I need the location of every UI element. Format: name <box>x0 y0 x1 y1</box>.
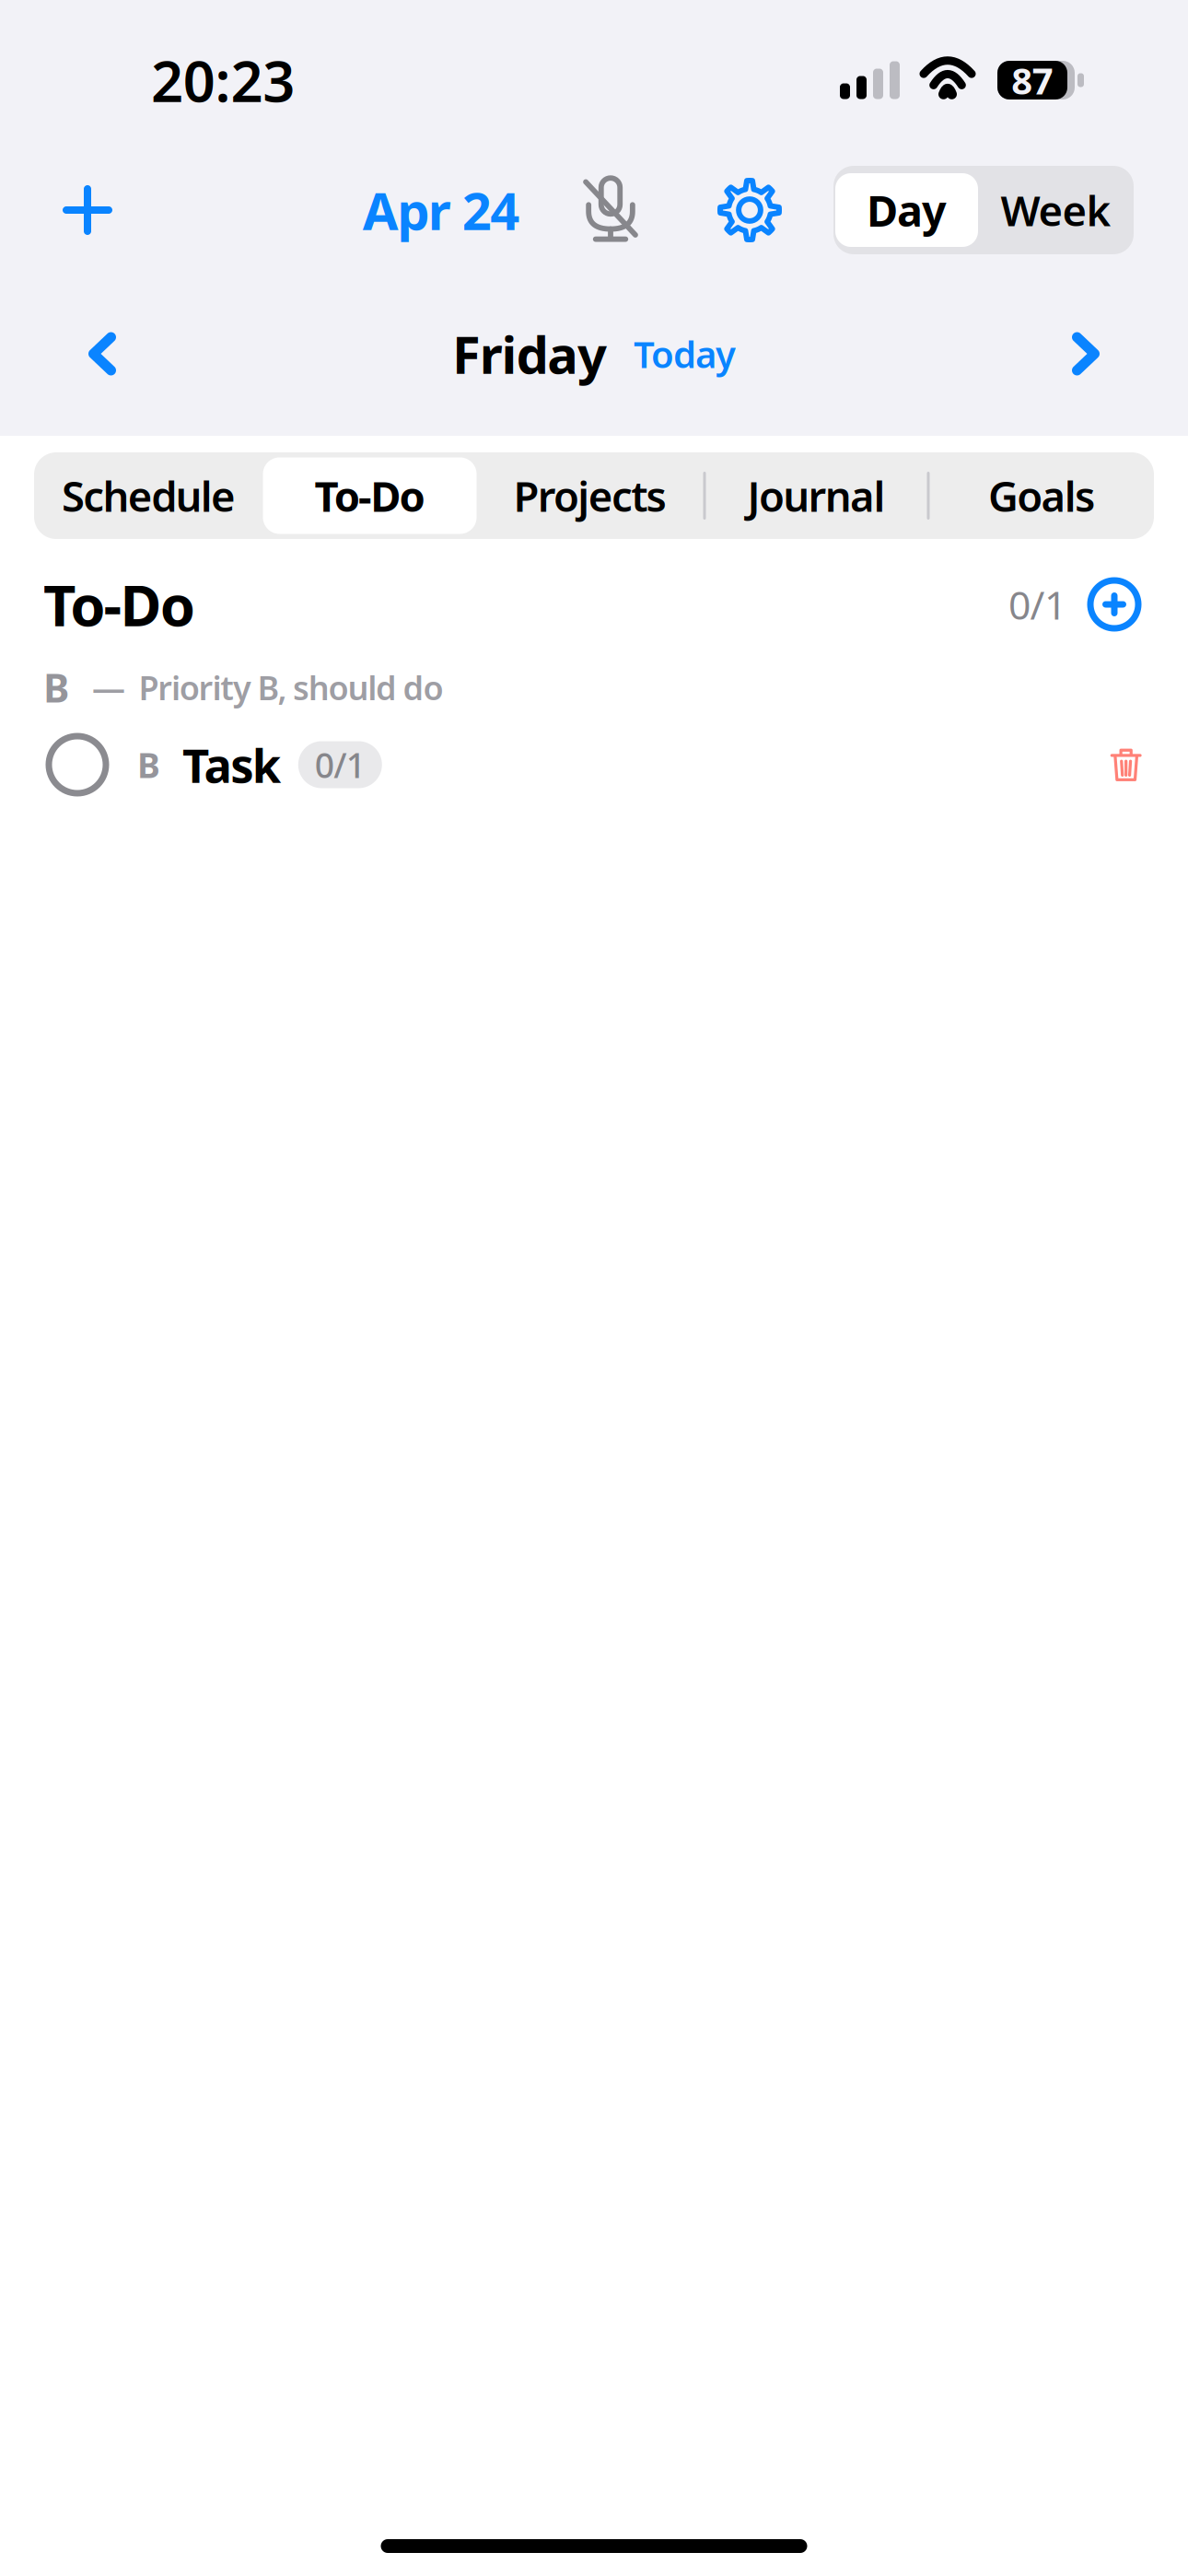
staticText: — Priority B, should do <box>92 665 443 709</box>
button[interactable]: Day <box>835 173 978 247</box>
staticText: B <box>137 742 160 788</box>
staticText: Day <box>867 181 947 239</box>
staticText: Friday <box>452 320 607 388</box>
button[interactable]: Projects <box>477 457 703 534</box>
staticText: Schedule <box>62 468 236 523</box>
staticText: Goals <box>988 468 1095 523</box>
button[interactable]: Delete task <box>1083 722 1188 807</box>
button[interactable]: Microphone off <box>576 166 646 254</box>
button[interactable]: Apr 24 <box>307 166 576 254</box>
button[interactable]: Journal <box>706 457 927 534</box>
staticText: Task <box>182 734 281 796</box>
staticText: B <box>43 661 69 713</box>
staticText: 0/1 <box>1008 578 1066 631</box>
button[interactable]: Settings <box>646 166 833 254</box>
staticText: To-Do <box>43 567 195 642</box>
button[interactable]: Previous day <box>64 315 141 392</box>
staticText: Today <box>634 329 736 378</box>
staticText: To-Do <box>314 468 425 523</box>
staticText: 0/1 <box>315 742 365 788</box>
button[interactable]: Next day <box>1047 315 1124 392</box>
staticText: Journal <box>747 468 885 523</box>
staticText: 20:23 <box>151 43 295 118</box>
button[interactable]: Mark task complete <box>0 722 109 807</box>
button[interactable]: To-Do <box>263 457 477 534</box>
button[interactable]: Schedule <box>35 457 263 534</box>
staticText: 87 <box>1011 56 1053 105</box>
button[interactable]: Week <box>978 173 1134 247</box>
staticText: Projects <box>513 468 666 523</box>
button[interactable]: Add task <box>1089 579 1140 630</box>
staticText: Apr 24 <box>363 176 520 244</box>
staticText: Week <box>1001 182 1111 238</box>
button[interactable]: Add <box>43 166 132 254</box>
button[interactable]: B <box>109 722 1083 807</box>
button[interactable]: Goals <box>930 457 1153 534</box>
